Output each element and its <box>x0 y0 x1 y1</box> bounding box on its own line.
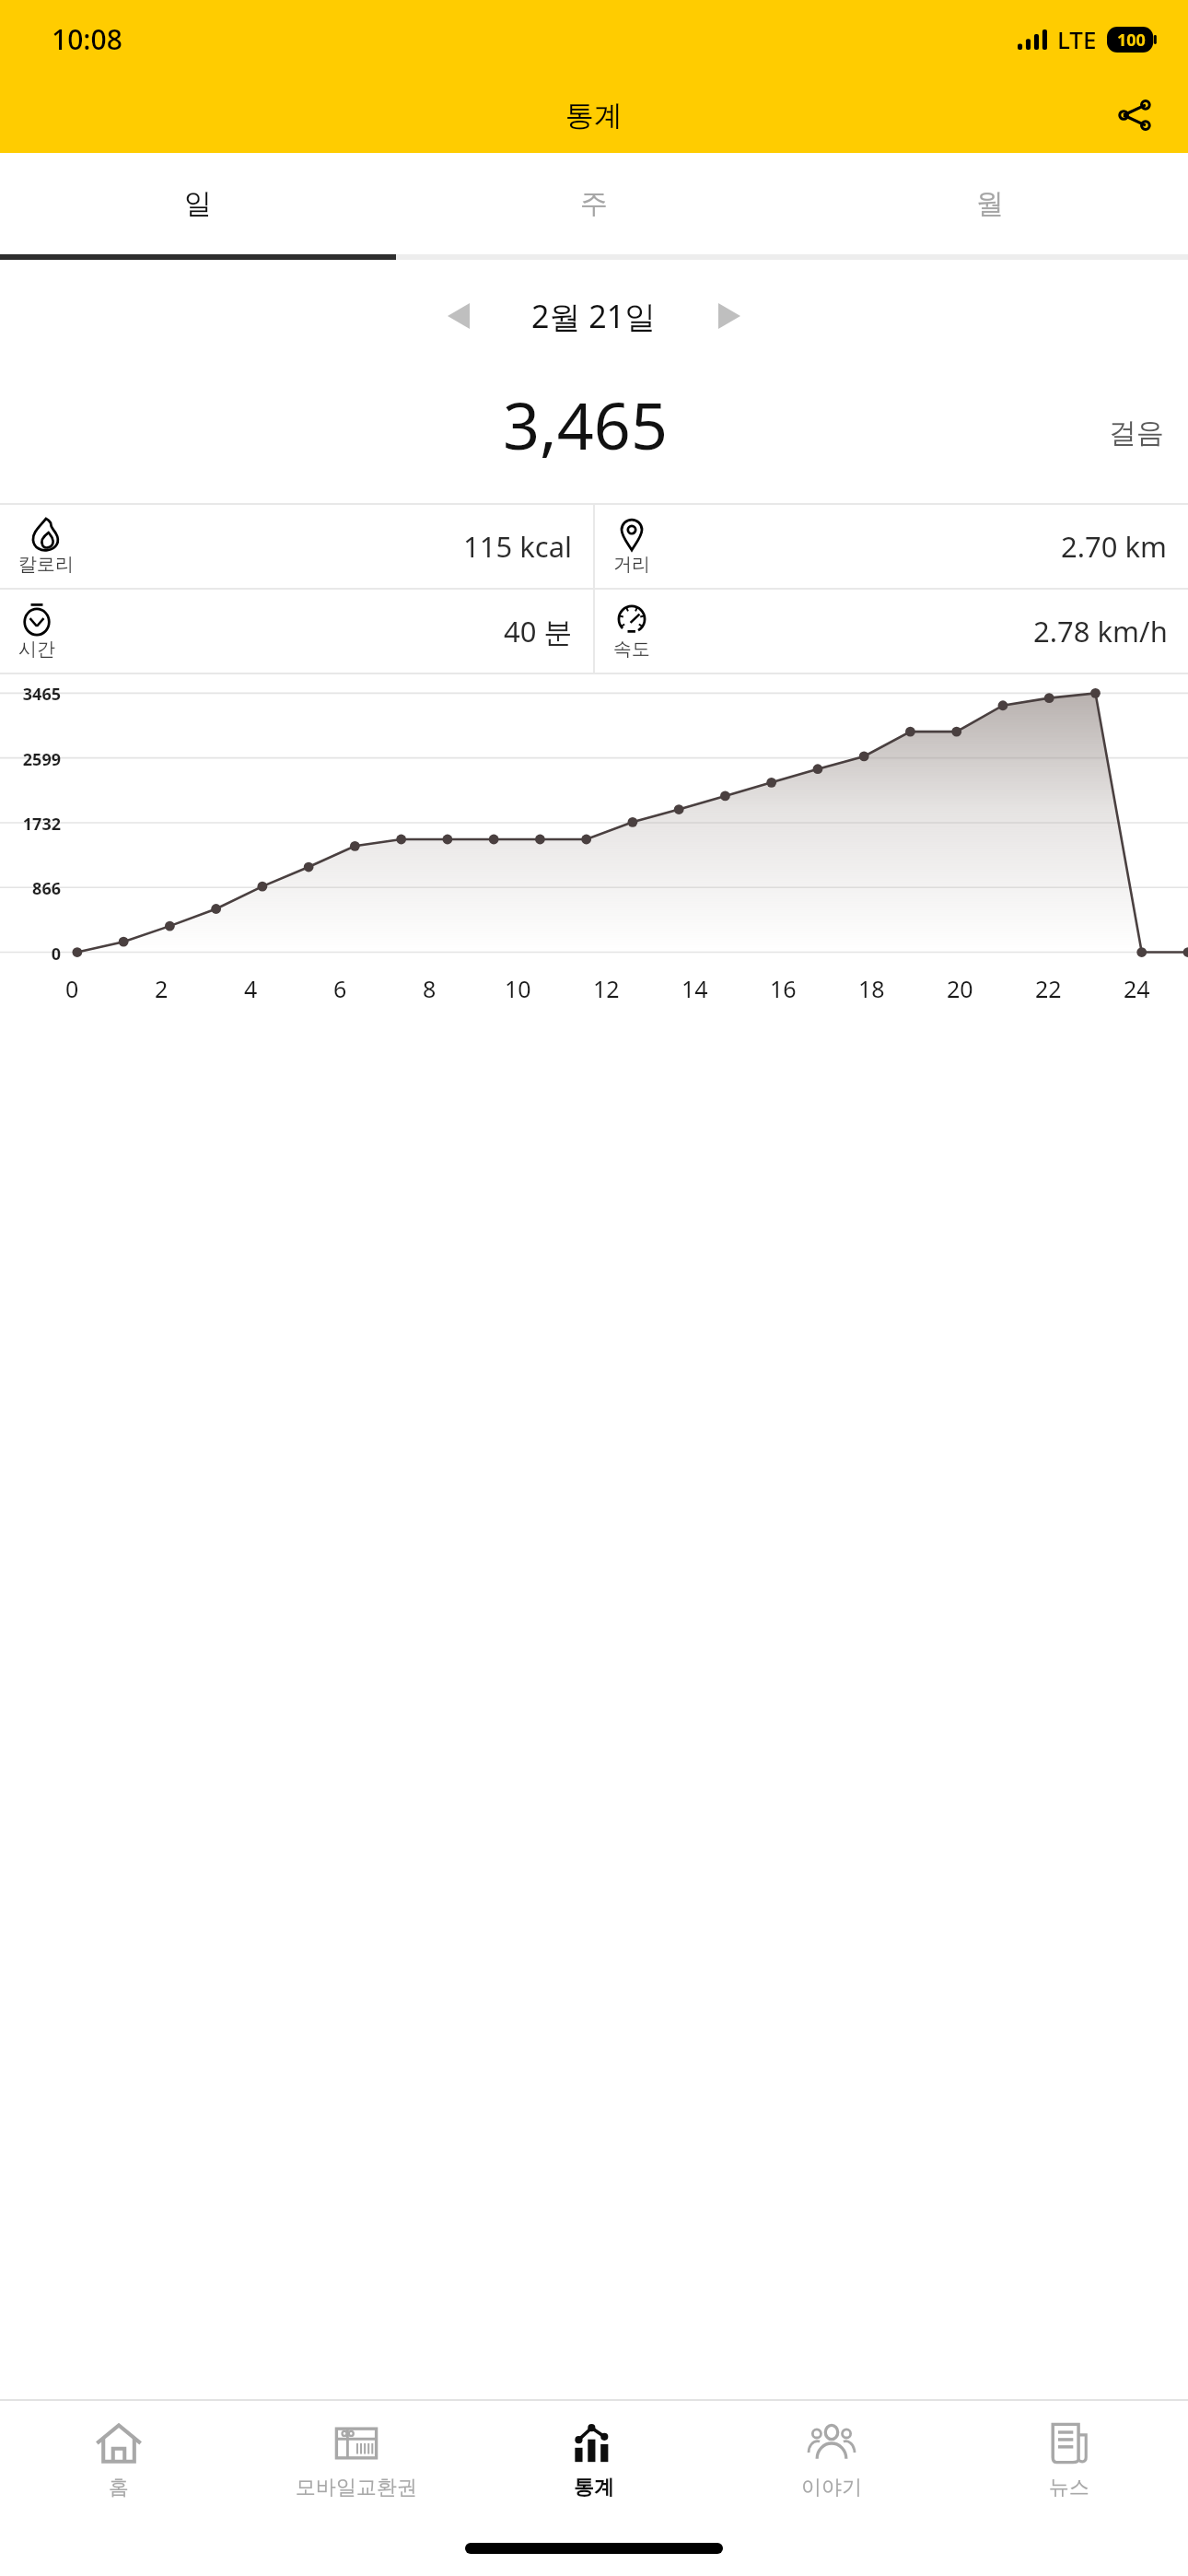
staticText: 2월 21일 <box>531 295 657 337</box>
button[interactable]: 속도 <box>595 590 1188 673</box>
button[interactable]: 주 <box>396 153 792 254</box>
staticText: 3,465 <box>503 381 668 468</box>
staticText: 1732 <box>7 813 61 836</box>
staticText: 12 <box>593 973 620 1004</box>
staticText: 칼로리 <box>18 553 74 576</box>
staticText: 10 <box>505 973 531 1004</box>
staticText: 866 <box>7 877 61 900</box>
staticText: 115 kcal <box>463 527 573 566</box>
staticText: 속도 <box>613 638 650 661</box>
button[interactable]: 칼로리 <box>0 505 593 588</box>
staticText: 18 <box>858 973 885 1004</box>
staticText: 시간 <box>18 638 55 661</box>
staticText: 0 <box>65 973 79 1004</box>
staticText: 3465 <box>7 683 61 706</box>
staticText: 월 <box>976 186 1004 221</box>
staticText: 6 <box>333 973 347 1004</box>
staticText: 홈 <box>109 2475 129 2500</box>
staticText: 걸음 <box>1109 416 1164 451</box>
staticText: 22 <box>1035 973 1062 1004</box>
staticText: 통계 <box>565 98 623 134</box>
button[interactable]: Previous day <box>429 287 488 345</box>
button[interactable]: 일 <box>0 153 396 254</box>
button[interactable]: 월 <box>792 153 1188 254</box>
staticText: 0 <box>7 943 61 966</box>
staticText: LTE <box>1057 23 1097 55</box>
staticText: 주 <box>580 186 608 221</box>
staticText: 뉴스 <box>1049 2475 1089 2500</box>
staticText: 2 <box>155 973 169 1004</box>
staticText: 일 <box>184 186 212 221</box>
button[interactable]: 홈 <box>0 2401 238 2532</box>
button[interactable]: Share <box>1107 88 1162 143</box>
button[interactable]: 모바일교환권 <box>238 2401 475 2532</box>
staticText: 100 <box>1117 29 1146 52</box>
staticText: 4 <box>244 973 258 1004</box>
button[interactable]: 이야기 <box>713 2401 950 2532</box>
staticText: 이야기 <box>801 2475 862 2500</box>
staticText: 24 <box>1124 973 1150 1004</box>
button[interactable]: Next day <box>700 287 759 345</box>
staticText: 10:08 <box>52 20 122 58</box>
button[interactable]: 시간 <box>0 590 593 673</box>
staticText: 2.70 km <box>1061 527 1168 566</box>
staticText: 14 <box>681 973 708 1004</box>
staticText: 거리 <box>613 553 650 576</box>
staticText: 16 <box>770 973 797 1004</box>
button[interactable]: 뉴스 <box>950 2401 1188 2532</box>
staticText: 8 <box>423 973 437 1004</box>
staticText: 통계 <box>574 2475 614 2500</box>
staticText: 20 <box>947 973 973 1004</box>
staticText: 40 분 <box>504 612 573 650</box>
button[interactable]: 통계 <box>475 2401 713 2532</box>
button[interactable]: 거리 <box>595 505 1188 588</box>
staticText: 2.78 km/h <box>1033 612 1168 650</box>
staticText: 2599 <box>7 748 61 771</box>
staticText: 모바일교환권 <box>296 2475 417 2500</box>
